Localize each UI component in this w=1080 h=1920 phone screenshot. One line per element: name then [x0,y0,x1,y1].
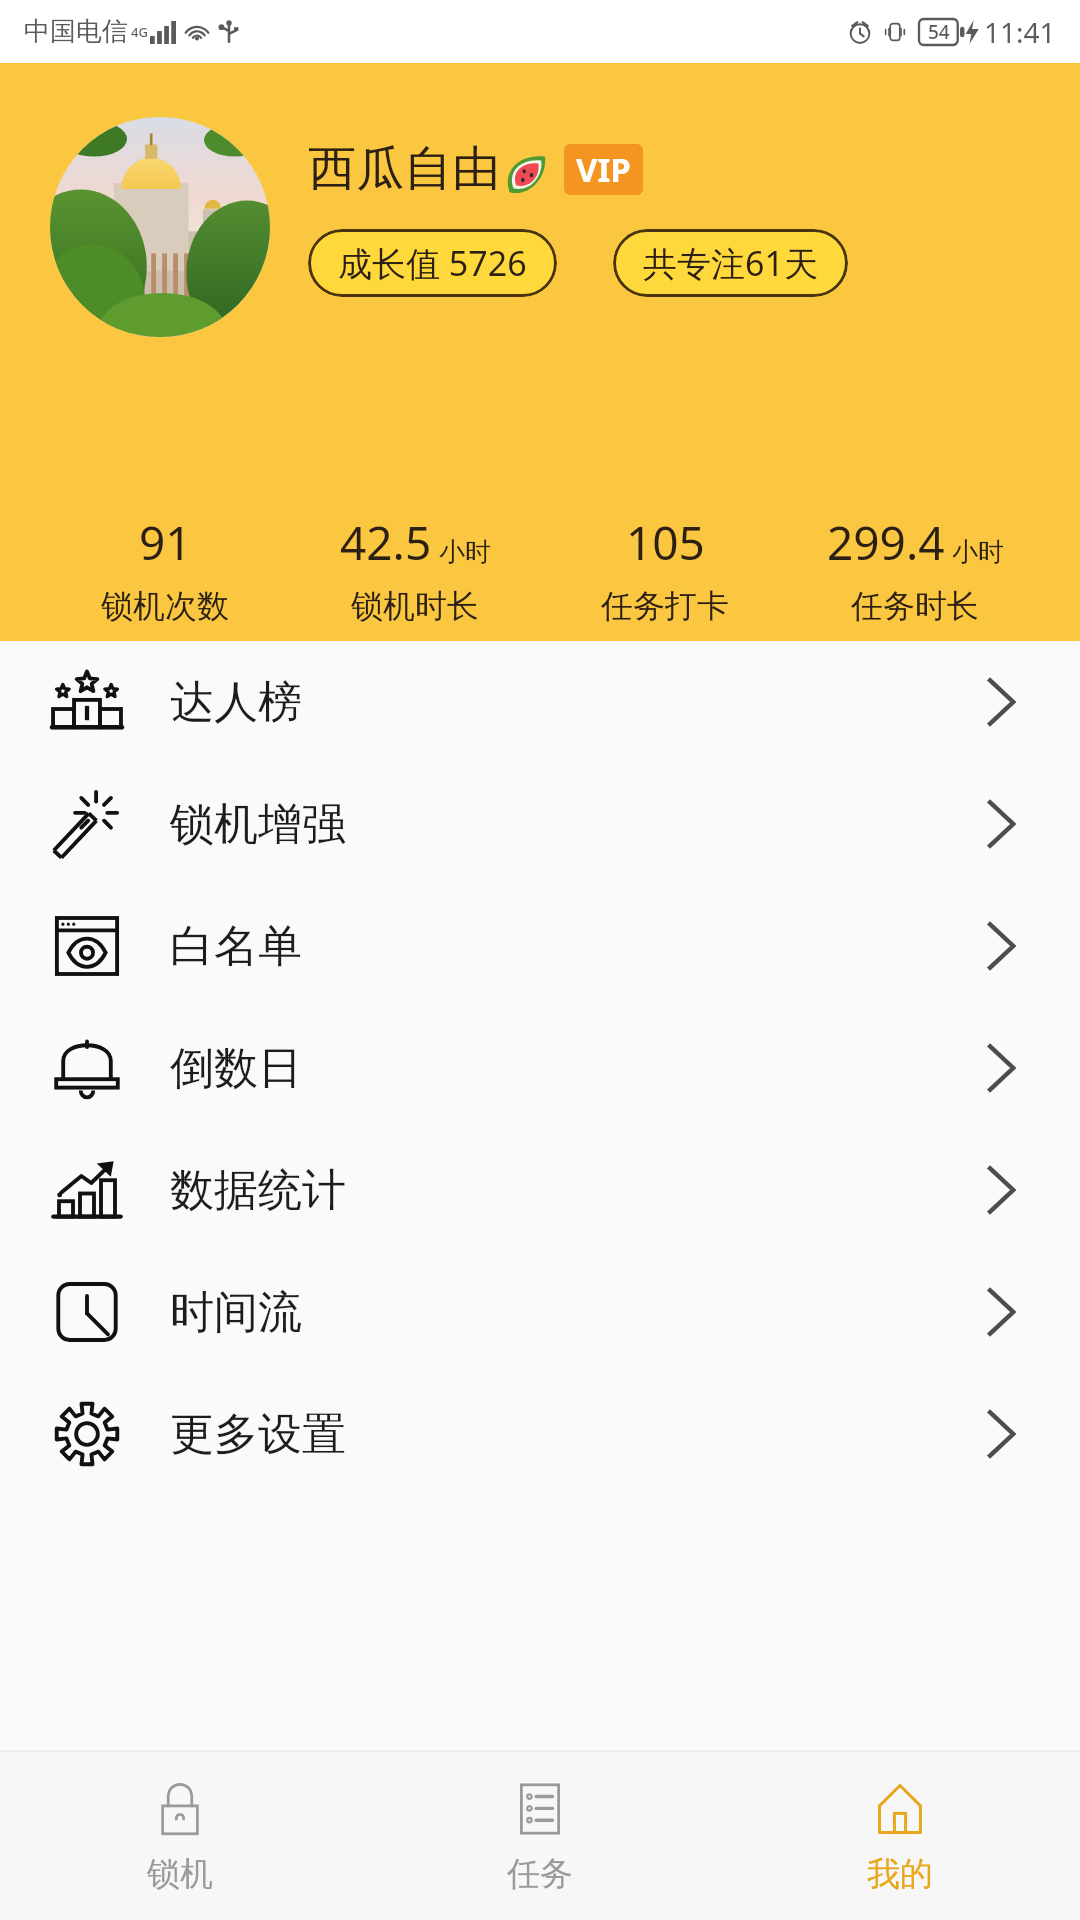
staticText: 锁机次数 [101,586,229,626]
staticText: 成长值 5726 [338,240,527,286]
button[interactable]: 白名单 [0,885,1080,1007]
staticText: 倒数日 [170,1041,302,1096]
staticText: 91 [139,511,192,574]
button[interactable]: 达人榜 [0,641,1080,763]
button[interactable]: 数据统计 [0,1129,1080,1251]
button[interactable]: 锁机 [0,1752,360,1920]
staticText: 白名单 [170,919,302,974]
staticText: 任务时长 [851,586,979,626]
staticText: 299.4 [827,511,945,574]
button[interactable]: 倒数日 [0,1007,1080,1129]
staticText: 更多设置 [170,1407,346,1462]
staticText: 达人榜 [170,675,302,730]
staticText: 11:41 [984,13,1056,51]
staticText: 105 [626,511,705,574]
staticText: 锁机时长 [351,586,479,626]
staticText: 任务 [507,1853,573,1895]
button[interactable]: 共专注61天 [613,229,848,297]
button[interactable]: 任务 [360,1752,720,1920]
button[interactable] [50,117,270,337]
button[interactable]: 锁机增强 [0,763,1080,885]
staticText: 数据统计 [170,1163,346,1218]
staticText: 4G [131,23,148,41]
staticText: VIP [576,147,631,192]
button[interactable]: 我的 [720,1752,1080,1920]
staticText: 时间流 [170,1285,302,1340]
staticText: 小时 [952,536,1004,569]
staticText: 小时 [439,536,491,569]
staticText: 锁机增强 [170,797,346,852]
staticText: 54 [928,19,950,45]
button[interactable]: 时间流 [0,1251,1080,1373]
staticText: 中国电信 [24,15,128,48]
staticText: 西瓜自由 [308,139,500,199]
staticText: 共专注61天 [643,240,818,286]
button[interactable]: 成长值 5726 [308,229,557,297]
staticText: 42.5 [340,511,432,574]
staticText: 我的 [867,1853,933,1895]
staticText: 锁机 [147,1853,213,1895]
button[interactable]: 更多设置 [0,1373,1080,1495]
staticText: 任务打卡 [601,586,729,626]
